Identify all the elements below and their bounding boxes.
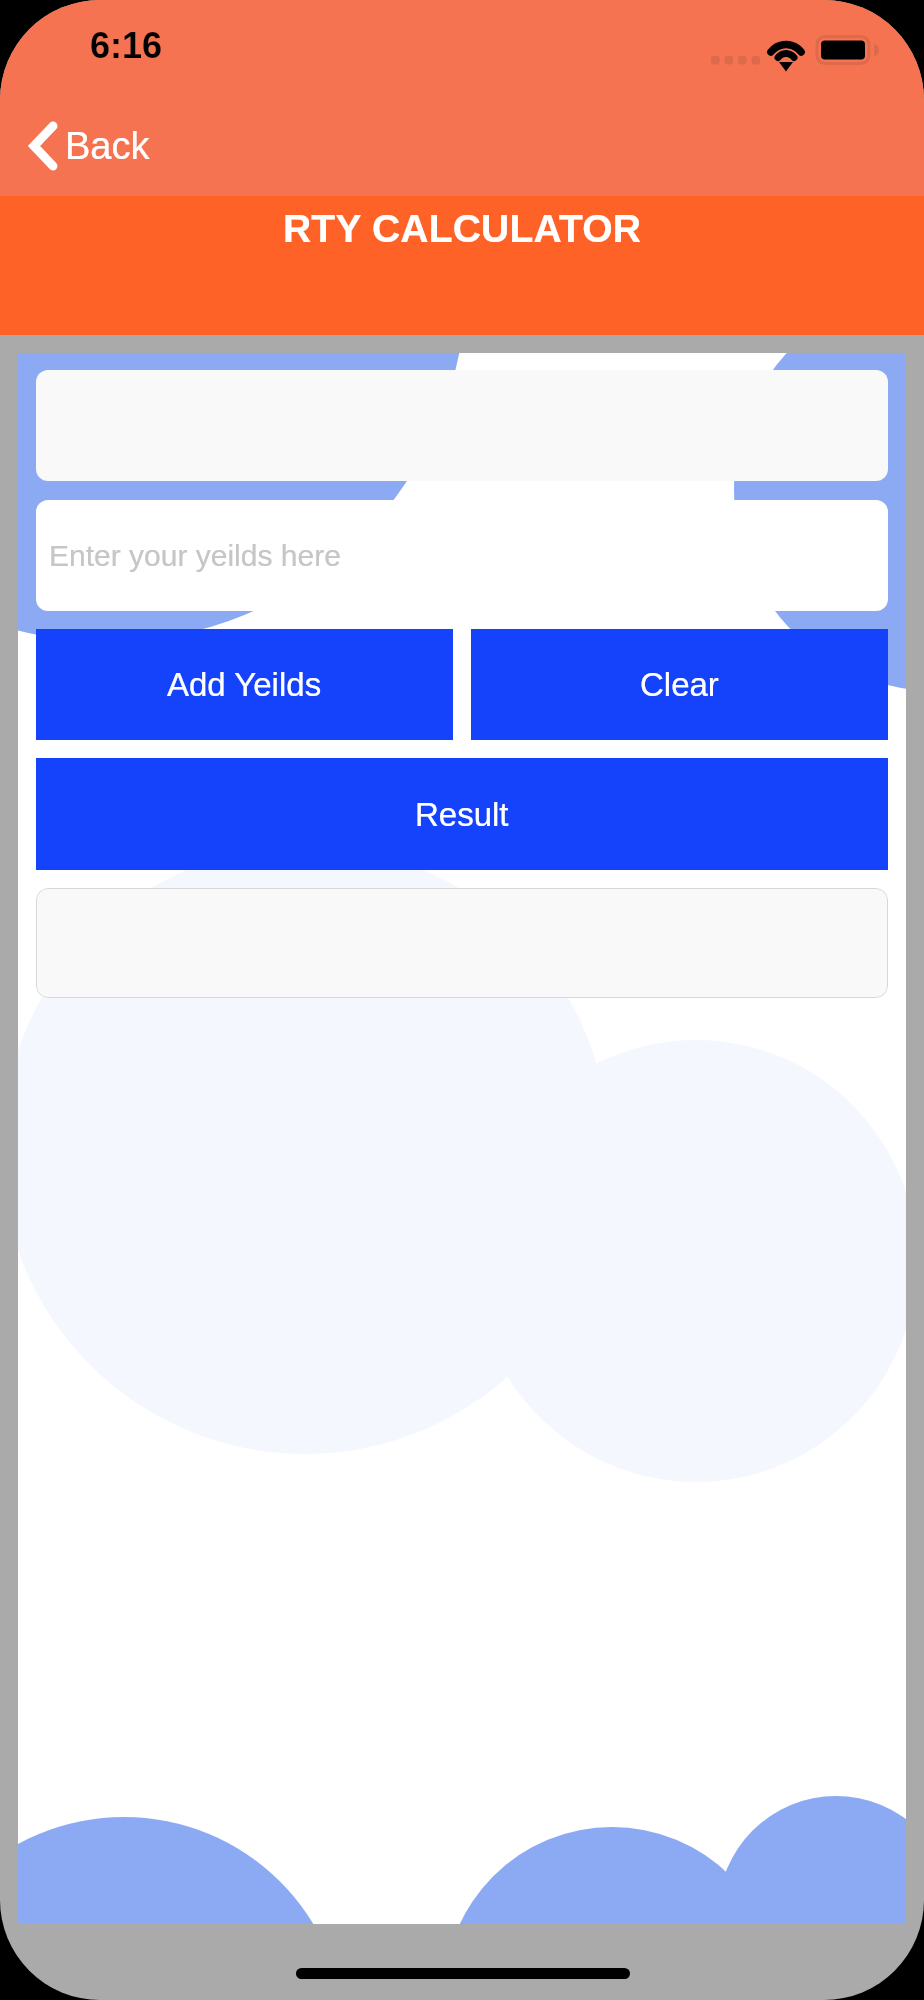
staticText: RTY CALCULATOR [283, 207, 642, 251]
button[interactable]: Clear [471, 629, 888, 740]
button[interactable]: Result [36, 758, 888, 870]
staticText: Back [65, 125, 150, 167]
staticText: 6:16 [90, 25, 163, 65]
staticText: Clear [640, 666, 719, 703]
staticText: Result [415, 796, 509, 833]
button[interactable]: Back [21, 116, 158, 176]
staticText: Enter your yeilds here [49, 539, 341, 573]
staticText: Add Yeilds [167, 666, 322, 703]
button[interactable]: Enter your yeilds here [36, 500, 888, 611]
button[interactable]: Add Yeilds [36, 629, 453, 740]
